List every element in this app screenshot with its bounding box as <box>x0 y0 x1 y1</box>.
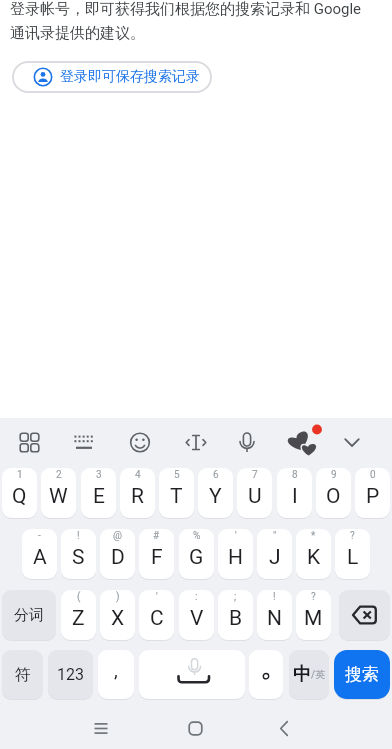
staticText: I <box>292 484 298 509</box>
button[interactable]: ) <box>100 590 135 640</box>
staticText: ? <box>311 591 316 603</box>
button[interactable]: 4 <box>120 468 155 518</box>
button[interactable] <box>176 709 216 749</box>
staticText: 中 <box>293 663 311 686</box>
staticText: L <box>347 545 359 570</box>
staticText: 5 <box>174 469 180 481</box>
button[interactable] <box>339 590 390 640</box>
button[interactable]: % <box>179 529 214 579</box>
button[interactable]: 8 <box>277 468 312 518</box>
staticText: ' <box>235 530 237 542</box>
staticText: 0 <box>370 469 376 481</box>
button[interactable]: 3 <box>81 468 116 518</box>
staticText: D <box>111 545 125 570</box>
button[interactable]: 6 <box>198 468 233 518</box>
button[interactable]: 1 <box>2 468 37 518</box>
staticText: # <box>153 530 160 542</box>
button[interactable]: 7 <box>237 468 272 518</box>
staticText: ! <box>273 591 276 603</box>
button[interactable]: ; <box>218 590 253 640</box>
staticText: N <box>267 606 282 631</box>
button[interactable] <box>139 650 245 699</box>
staticText: ) <box>116 591 120 603</box>
staticText: : <box>195 591 198 603</box>
staticText: 1 <box>17 469 23 481</box>
staticText: 7 <box>252 469 258 481</box>
button[interactable]: # <box>139 529 174 579</box>
button[interactable]: 2 <box>41 468 76 518</box>
staticText: 搜索 <box>345 664 379 685</box>
staticText: 9 <box>331 469 337 481</box>
staticText: 符 <box>15 665 31 685</box>
staticText: X <box>111 606 125 631</box>
staticText: 2 <box>56 469 62 481</box>
button[interactable] <box>229 424 265 460</box>
button[interactable]: 中 <box>289 650 329 699</box>
staticText: C <box>150 606 164 631</box>
staticText: - <box>38 530 41 542</box>
button[interactable] <box>334 424 370 460</box>
staticText: B <box>229 606 243 631</box>
button[interactable]: ' <box>139 590 174 640</box>
button[interactable]: ' <box>218 529 253 579</box>
staticText: 通讯录提供的建议。 <box>10 24 145 43</box>
staticText: 3 <box>96 469 102 481</box>
button[interactable]: 5 <box>159 468 194 518</box>
button[interactable] <box>178 424 214 460</box>
button[interactable]: ! <box>61 529 96 579</box>
button[interactable]: , <box>98 650 134 699</box>
button[interactable]: 登录即可保存搜索记录 <box>12 61 212 93</box>
button[interactable]: 分词 <box>2 590 56 640</box>
staticText: ' <box>156 591 158 603</box>
button[interactable] <box>66 424 102 460</box>
staticText: ? <box>350 530 355 542</box>
staticText: 4 <box>135 469 141 481</box>
button[interactable] <box>283 424 319 460</box>
staticText: @ <box>113 530 122 542</box>
button[interactable]: " <box>257 529 292 579</box>
staticText: K <box>307 545 321 570</box>
staticText: " <box>273 530 277 542</box>
staticText: % <box>193 530 201 542</box>
button[interactable]: 符 <box>2 650 43 699</box>
staticText: P <box>366 484 380 509</box>
staticText: J <box>269 545 281 570</box>
staticText: 登录帐号，即可获得我们根据您的搜索记录和 Google <box>10 0 362 19</box>
button[interactable]: : <box>179 590 214 640</box>
staticText: 123 <box>57 665 84 684</box>
staticText: R <box>131 484 144 509</box>
button[interactable]: ! <box>257 590 292 640</box>
button[interactable]: @ <box>100 529 135 579</box>
staticText: * <box>311 530 316 542</box>
staticText: G <box>189 545 204 570</box>
staticText: S <box>72 545 85 570</box>
button[interactable]: ? <box>296 590 331 640</box>
button[interactable] <box>249 650 283 699</box>
button[interactable]: 搜索 <box>334 650 390 699</box>
staticText: M <box>304 606 323 631</box>
button[interactable] <box>122 424 158 460</box>
staticText: F <box>151 545 163 570</box>
staticText: V <box>190 606 204 631</box>
staticText: E <box>93 484 105 509</box>
button[interactable]: - <box>22 529 57 579</box>
button[interactable]: ( <box>61 590 96 640</box>
staticText: 分词 <box>14 606 44 625</box>
staticText: Y <box>209 484 222 509</box>
staticText: O <box>326 484 341 509</box>
staticText: H <box>228 545 243 570</box>
button[interactable] <box>12 424 48 460</box>
staticText: ; <box>234 591 237 603</box>
button[interactable] <box>81 709 121 749</box>
staticText: 8 <box>292 469 298 481</box>
staticText: ( <box>77 591 81 603</box>
staticText: ! <box>77 530 80 542</box>
button[interactable]: 0 <box>355 468 390 518</box>
button[interactable] <box>264 709 304 749</box>
button[interactable]: ? <box>335 529 370 579</box>
staticText: U <box>248 484 262 509</box>
button[interactable]: 9 <box>316 468 351 518</box>
button[interactable]: * <box>296 529 331 579</box>
button[interactable]: 123 <box>48 650 93 699</box>
staticText: , <box>114 659 118 681</box>
